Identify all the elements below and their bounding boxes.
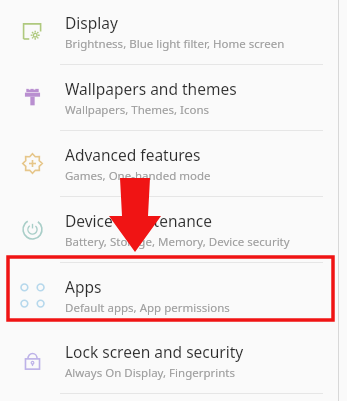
- staticText: Lock screen and security: [65, 341, 244, 362]
- staticText: Apps: [65, 276, 102, 297]
- staticText: Battery, Storage, Memory, Device securit…: [65, 234, 290, 250]
- button[interactable]: Display: [0, 0, 347, 64]
- staticText: Wallpapers and themes: [65, 78, 237, 99]
- staticText: Games, One-handed mode: [65, 168, 211, 184]
- staticText: Display: [65, 12, 118, 33]
- staticText: Default apps, App permissions: [65, 300, 230, 316]
- button[interactable]: Advanced features: [0, 131, 347, 196]
- staticText: Advanced features: [65, 144, 201, 165]
- staticText: Device maintenance: [65, 210, 212, 231]
- staticText: Brightness, Blue light filter, Home scre…: [65, 36, 285, 52]
- button[interactable]: Device maintenance: [0, 197, 347, 262]
- button[interactable]: Lock screen and security: [0, 328, 347, 393]
- staticText: Always On Display, Fingerprints: [65, 365, 235, 381]
- button[interactable]: Apps: [0, 263, 347, 328]
- staticText: Wallpapers, Themes, Icons: [65, 102, 210, 118]
- button[interactable]: Wallpapers and themes: [0, 65, 347, 130]
